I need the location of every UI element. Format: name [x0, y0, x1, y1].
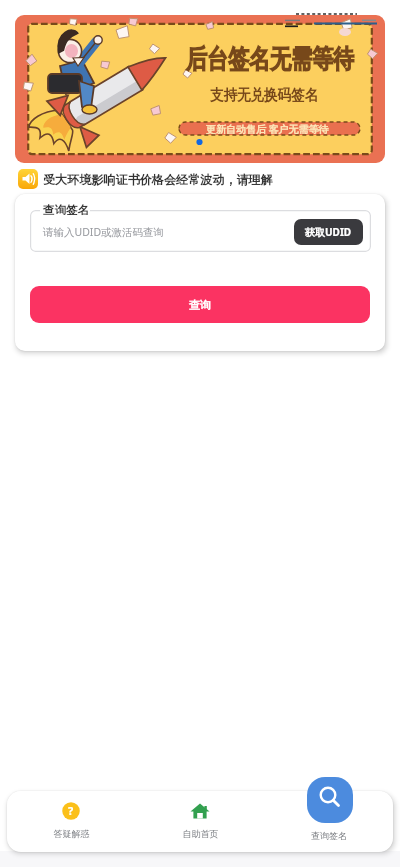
- staticText: 查询签名: [43, 203, 89, 217]
- staticText: 查询: [189, 298, 211, 312]
- staticText: 查询签名: [298, 830, 360, 841]
- button[interactable]: 后台签名无需等待: [15, 15, 385, 163]
- button[interactable]: 受大环境影响证书价格会经常波动，请理解: [15, 167, 385, 191]
- staticText: 支持无兑换码签名: [144, 86, 384, 105]
- staticText: 自助首页: [169, 828, 232, 839]
- staticText: ?: [68, 803, 74, 818]
- staticText: 获取UDID: [305, 225, 352, 239]
- staticText: 答疑解惑: [40, 828, 103, 839]
- button[interactable]: 自助首页: [169, 795, 232, 845]
- button[interactable]: 查询签名: [298, 770, 360, 845]
- button[interactable]: 获取UDID: [294, 219, 363, 245]
- button[interactable]: 请输入UDID或激活码查询: [30, 210, 371, 252]
- staticText: 后台签名无需等待: [150, 43, 385, 75]
- staticText: 受大环境影响证书价格会经常波动，请理解: [43, 172, 273, 187]
- button[interactable]: ?: [40, 795, 103, 845]
- button[interactable]: 更新自动售后 客户无需等待: [179, 122, 360, 135]
- staticText: 更新自动售后 客户无需等待: [206, 122, 329, 135]
- staticText: 请输入UDID或激活码查询: [43, 225, 165, 239]
- button[interactable]: 查询: [30, 286, 370, 323]
